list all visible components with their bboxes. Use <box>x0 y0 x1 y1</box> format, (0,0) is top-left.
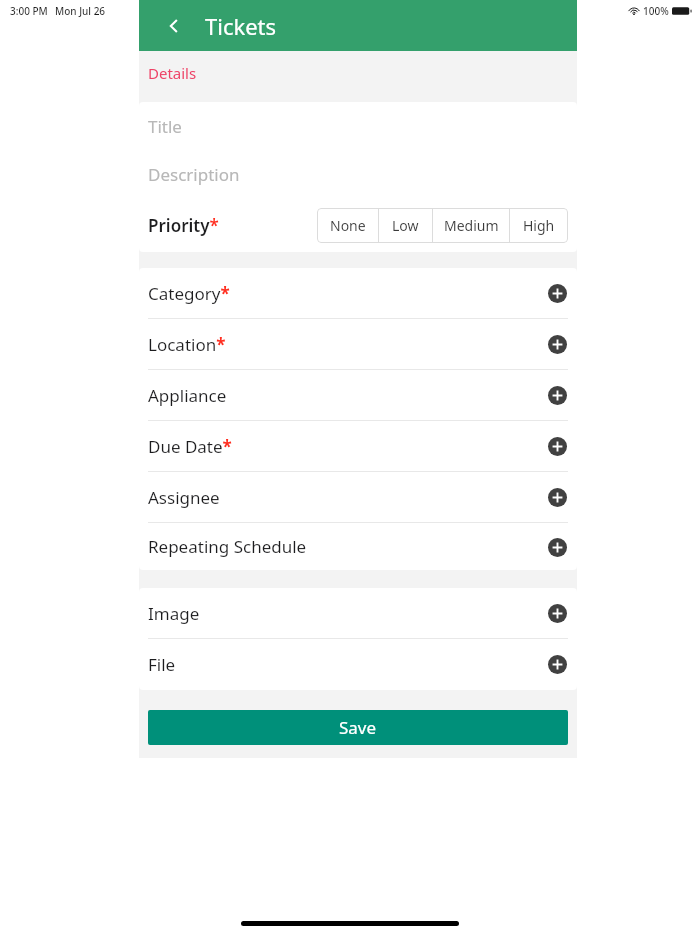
staticText: Repeating Schedule <box>148 535 307 558</box>
staticText: Due Date* <box>148 435 232 458</box>
staticText: Save <box>339 716 377 739</box>
button[interactable]: High <box>510 208 568 243</box>
button[interactable]: Save <box>148 710 568 745</box>
staticText: 100% <box>643 4 669 18</box>
button[interactable]: Title <box>139 102 577 150</box>
button[interactable]: Repeating Schedule <box>139 523 577 570</box>
staticText: High <box>523 216 555 235</box>
staticText: Low <box>392 216 419 235</box>
button[interactable]: Back <box>159 11 189 41</box>
other: Add Image <box>547 603 567 623</box>
button[interactable]: Low <box>379 208 432 243</box>
staticText: Location* <box>148 333 226 356</box>
button[interactable]: Category* <box>139 268 577 318</box>
staticText: None <box>330 216 366 235</box>
other: Add Category <box>547 283 567 303</box>
staticText: Category* <box>148 282 230 305</box>
other: Add File <box>547 654 567 674</box>
button[interactable]: Location* <box>139 319 577 369</box>
other: Add Repeating Schedule <box>547 537 567 557</box>
staticText: Details <box>148 63 197 83</box>
button[interactable]: None <box>317 208 378 243</box>
other: Add Appliance <box>547 385 567 405</box>
staticText: Priority* <box>148 214 219 237</box>
other: Add Due Date <box>547 436 567 456</box>
button[interactable]: File <box>139 639 577 689</box>
button[interactable]: Image <box>139 588 577 638</box>
staticText: Medium <box>444 216 499 235</box>
staticText: Assignee <box>148 486 220 509</box>
other: Add Location <box>547 334 567 354</box>
staticText: File <box>148 653 176 676</box>
staticText: Image <box>148 602 200 625</box>
button[interactable]: Due Date* <box>139 421 577 471</box>
staticText: Title <box>148 115 182 138</box>
button[interactable]: Description <box>139 150 577 198</box>
button[interactable]: Assignee <box>139 472 577 522</box>
staticText: Appliance <box>148 384 227 407</box>
button[interactable]: Appliance <box>139 370 577 420</box>
staticText: Description <box>148 163 240 186</box>
other: Add Assignee <box>547 487 567 507</box>
staticText: 3:00 PM <box>10 4 48 18</box>
staticText: Tickets <box>205 11 277 41</box>
button[interactable]: Medium <box>433 208 509 243</box>
staticText: Mon Jul 26 <box>55 4 106 18</box>
